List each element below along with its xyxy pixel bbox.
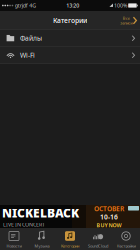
staticText: SoundCloud [88,243,108,248]
staticText: 100% [114,2,127,9]
staticText: OCTOBER [94,204,124,213]
button[interactable]: Файлы [0,30,140,47]
staticText: NICKELBACK [2,205,79,221]
staticText: 13:20 [66,2,79,9]
staticText: gtrjdf [15,2,28,9]
staticText: Wi-Fi [20,51,35,60]
button[interactable]: SoundCloud [84,228,112,250]
button[interactable]: Настройки [112,228,140,250]
button[interactable]: Все [120,11,140,30]
staticText: Категории [53,16,87,25]
button[interactable]: Категории [56,228,84,250]
staticText: Новости [6,243,21,248]
button[interactable]: Новости [0,228,28,250]
staticText: BUY NOW [96,222,121,229]
staticText: Все [123,15,130,21]
staticText: 10-16 [100,213,118,221]
button[interactable]: NICKELBACK [0,205,140,228]
staticText: 4G [29,2,36,9]
staticText: Настройки [116,243,135,248]
button[interactable]: Wi-Fi [0,47,140,64]
staticText: Музыка [34,243,49,248]
staticText: LIVE IN CONCERT [3,221,45,228]
staticText: Файлы [20,34,42,43]
button[interactable]: Музыка [28,228,56,250]
staticText: записи [120,20,132,25]
staticText: Категории [61,243,79,248]
